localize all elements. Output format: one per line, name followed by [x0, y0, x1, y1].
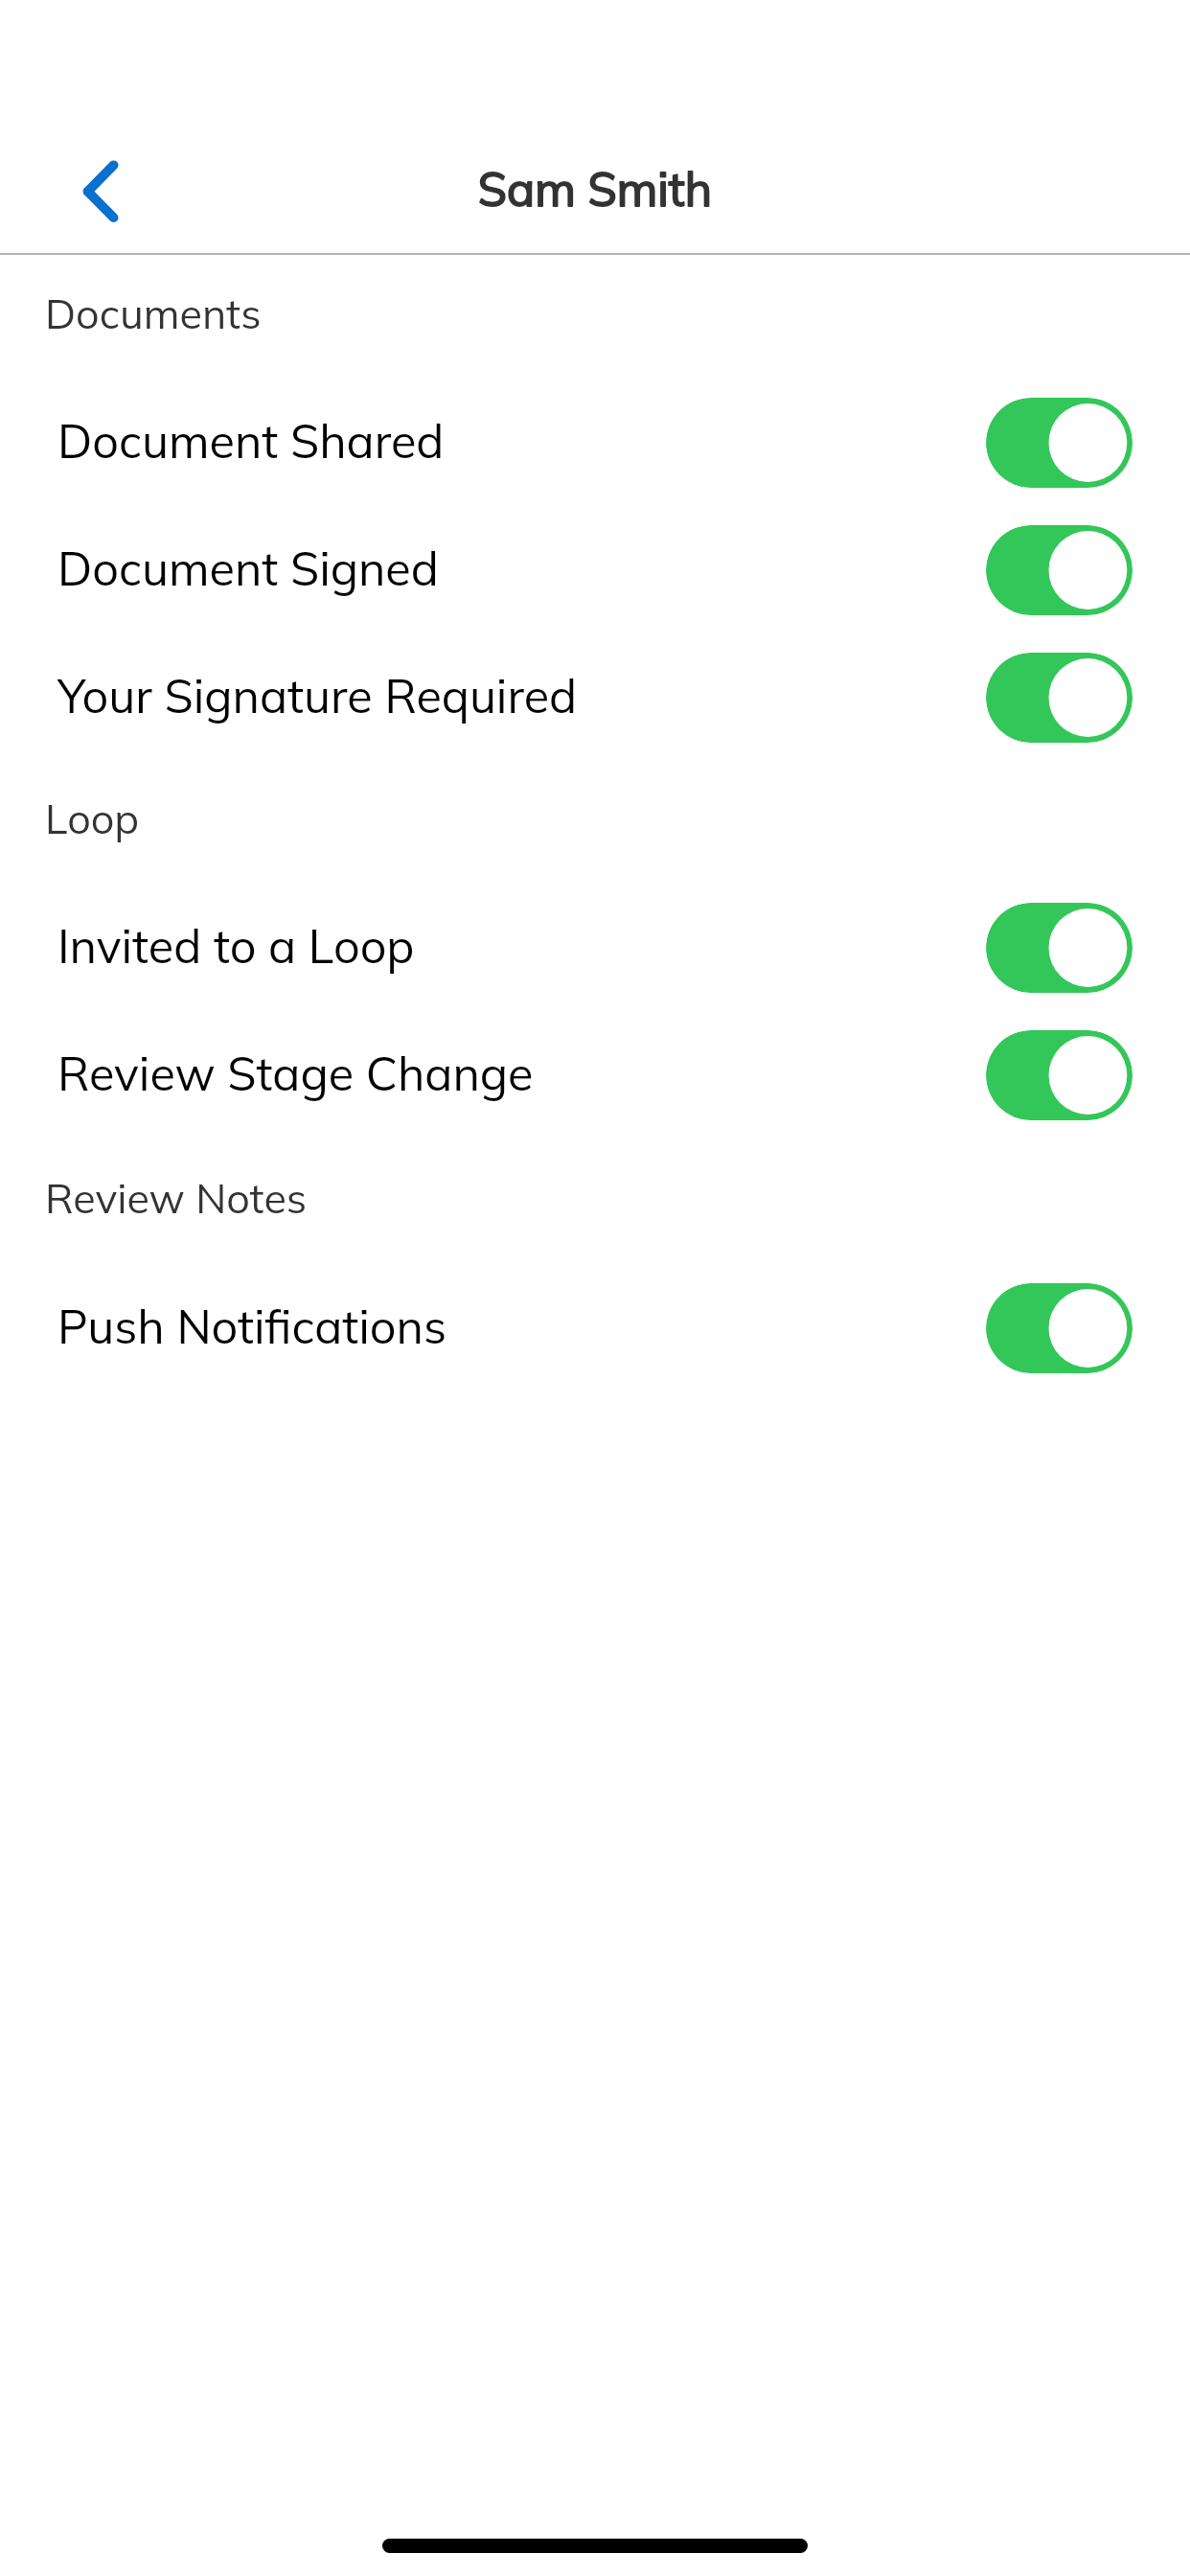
button[interactable]: Document Shared [0, 379, 1190, 506]
staticText: Review Stage Change [57, 1044, 534, 1102]
staticText: Review Notes [45, 1172, 308, 1224]
staticText: Document Signed [57, 539, 439, 597]
button[interactable]: Invited to a Loop, on [986, 903, 1133, 993]
button[interactable]: Push Notifications, on [986, 1283, 1133, 1373]
button[interactable]: Back [47, 138, 152, 243]
staticText: Sam Smith [0, 159, 1190, 218]
staticText: Documents [45, 287, 262, 339]
staticText: Push Notifications [57, 1297, 447, 1355]
staticText: Invited to a Loop [57, 916, 415, 975]
button[interactable]: Your Signature Required [0, 634, 1190, 761]
staticText: Loop [45, 793, 140, 844]
button[interactable]: Document Signed, on [986, 525, 1133, 615]
button[interactable]: Document Signed [0, 507, 1190, 633]
button[interactable]: Review Stage Change [0, 1012, 1190, 1138]
staticText: Sam Smith [0, 159, 1190, 218]
button[interactable]: Review Stage Change, on [986, 1030, 1133, 1120]
button[interactable]: Your Signature Required, on [986, 653, 1133, 743]
button[interactable]: Invited to a Loop [0, 885, 1190, 1011]
button[interactable]: Document Shared, on [986, 398, 1133, 488]
staticText: Document Shared [57, 411, 445, 470]
staticText: Your Signature Required [57, 666, 578, 724]
button[interactable]: Push Notifications [0, 1265, 1190, 1391]
